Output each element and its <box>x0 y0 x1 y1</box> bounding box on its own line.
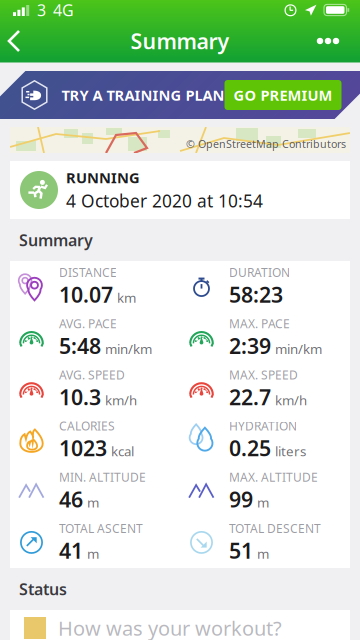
button[interactable]: More options <box>315 21 360 61</box>
staticText: MAX. PACE <box>229 316 290 331</box>
staticText: AVG. PACE <box>59 316 117 331</box>
staticText: km/h <box>275 391 307 409</box>
staticText: 4 October 2020 at 10:54 <box>66 189 263 212</box>
staticText: GO PREMIUM <box>233 85 332 105</box>
staticText: 46 <box>59 485 83 513</box>
staticText: MAX. SPEED <box>229 367 298 383</box>
staticText: 10.3 <box>59 383 101 411</box>
staticText: m <box>257 493 269 511</box>
staticText: HYDRATION <box>229 418 297 434</box>
staticText: MAX. ALTITUDE <box>229 469 318 485</box>
staticText: m <box>257 545 269 562</box>
staticText: km/h <box>105 391 137 409</box>
staticText: AVG. SPEED <box>59 367 125 383</box>
staticText: 5:48 <box>59 331 101 360</box>
staticText: 1023 <box>59 434 107 462</box>
staticText: min/km <box>275 340 322 358</box>
staticText: 22.7 <box>229 383 271 411</box>
staticText: Status <box>19 578 67 600</box>
staticText: MIN. ALTITUDE <box>59 469 146 485</box>
staticText: DISTANCE <box>59 264 117 280</box>
staticText: 0.25 <box>229 434 271 462</box>
button[interactable]: Route map <box>10 127 350 153</box>
staticText: kcal <box>111 442 134 460</box>
staticText: TRY A TRAINING PLAN <box>61 85 224 105</box>
staticText: TOTAL DESCENT <box>229 520 321 536</box>
staticText: min/km <box>105 340 152 358</box>
staticText: m <box>87 493 99 511</box>
staticText: 51 <box>229 536 253 564</box>
staticText: 58:23 <box>229 280 283 309</box>
staticText: 4G <box>53 0 74 21</box>
staticText: m <box>87 545 99 562</box>
staticText: DURATION <box>229 264 290 280</box>
staticText: CALORIES <box>59 418 115 434</box>
staticText: 99 <box>229 485 253 513</box>
staticText: 10.07 <box>59 280 113 309</box>
button[interactable]: TRY A TRAINING PLAN <box>26 71 334 119</box>
staticText: TOTAL ASCENT <box>59 520 143 536</box>
button[interactable]: Back <box>0 21 36 61</box>
staticText: 2:39 <box>229 331 271 360</box>
staticText: km <box>117 289 136 306</box>
staticText: 41 <box>59 536 83 564</box>
staticText: RUNNING <box>66 168 140 187</box>
staticText: liters <box>275 442 306 460</box>
staticText: Summary <box>130 27 229 55</box>
staticText: 3 <box>37 0 46 21</box>
staticText: Summary <box>19 229 93 251</box>
staticText: © OpenStreetMap Contributors <box>186 137 346 151</box>
staticText: How was your workout? <box>58 615 282 640</box>
